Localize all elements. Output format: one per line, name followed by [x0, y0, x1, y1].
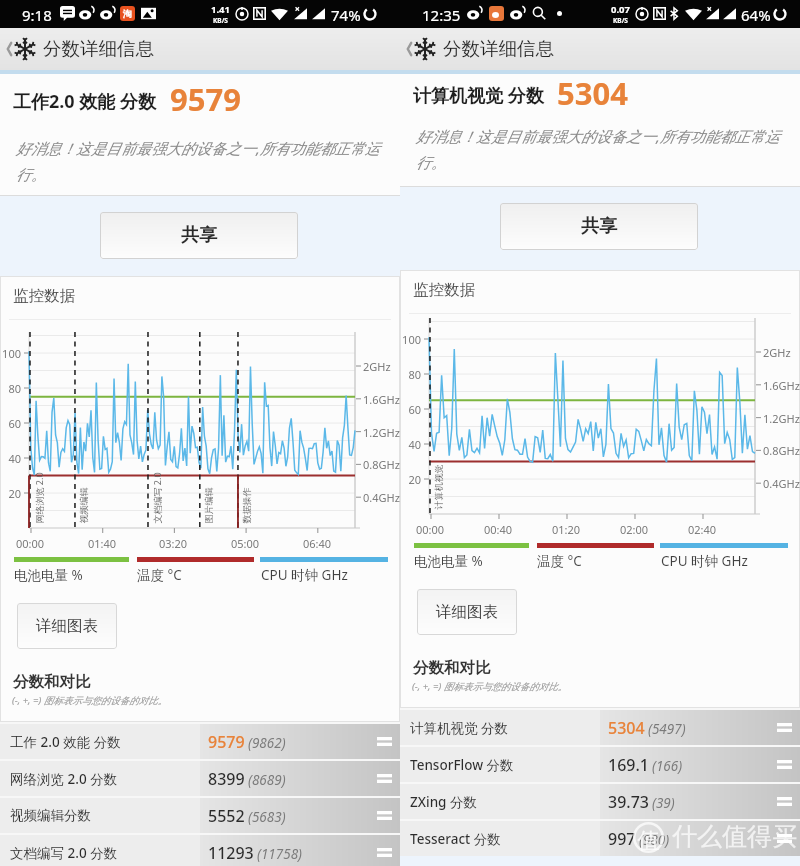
staticText: 监控数据 — [13, 286, 75, 306]
staticText: (11758) — [257, 845, 303, 863]
staticText: 2GHz — [763, 345, 791, 360]
staticText: 9:18 — [22, 5, 52, 25]
staticText: 9579 — [208, 731, 245, 753]
staticText: 好消息！这是目前最强大的设备之一,所有功能都正常运行。 — [16, 138, 394, 185]
staticText: 5552 — [208, 805, 245, 827]
staticText: 计算机视觉 分数 — [410, 719, 509, 737]
staticText: 工作2.0 效能 分数 — [13, 89, 157, 114]
staticText: 0.07 — [611, 3, 630, 16]
staticText: 1.2GHz — [363, 425, 400, 440]
staticText: 1.2GHz — [763, 411, 800, 426]
staticText: 12:35 — [422, 5, 461, 25]
staticText: 64% — [741, 5, 771, 25]
staticText: 1.6GHz — [763, 378, 800, 393]
staticText: 5304 — [557, 72, 628, 114]
staticText: 20 — [0, 486, 21, 501]
staticText: 网络浏览 2.0 分数 — [10, 770, 118, 788]
staticText: (8689) — [248, 771, 286, 789]
button[interactable]: 工作 2.0 效能 分数 — [0, 724, 400, 759]
staticText: 数据操作 — [240, 487, 251, 523]
staticText: 05:00 — [231, 536, 260, 551]
button[interactable]: Back — [402, 29, 438, 69]
staticText: (39) — [652, 794, 675, 812]
staticText: 00:00 — [416, 522, 445, 537]
button[interactable]: ZXing 分数 — [400, 784, 800, 819]
staticText: 什么值得买 — [672, 821, 797, 852]
button[interactable]: 计算机视觉 分数 — [400, 710, 800, 745]
staticText: 文档编写 2.0 分数 — [10, 844, 118, 862]
staticText: 温度 °C — [537, 552, 582, 570]
staticText: 00:00 — [16, 536, 45, 551]
button[interactable]: 网络浏览 2.0 分数 — [0, 761, 400, 796]
staticText: 视频编辑分数 — [10, 807, 91, 824]
staticText: 淘 — [123, 8, 132, 19]
button[interactable]: Back — [2, 29, 38, 69]
staticText: 计算机视觉 — [432, 464, 443, 509]
staticText: 100 — [400, 332, 421, 347]
staticText: 74% — [331, 5, 361, 25]
staticText: (-, +, =) 图标表示与您的设备的对比。 — [412, 680, 568, 693]
staticText: 02:40 — [688, 522, 717, 537]
staticText: 8399 — [208, 768, 245, 790]
staticText: 1.41 — [211, 3, 230, 16]
staticText: 5304 — [608, 717, 645, 739]
staticText: 1.6GHz — [363, 392, 400, 407]
staticText: 11293 — [208, 842, 254, 864]
staticText: 02:00 — [620, 522, 649, 537]
staticText: 共享 — [581, 215, 617, 238]
staticText: 00:40 — [484, 522, 513, 537]
button[interactable]: 详细图表 — [417, 589, 517, 635]
staticText: 分数详细信息 — [443, 37, 554, 60]
staticText: 60 — [0, 416, 21, 431]
staticText: (9862) — [248, 734, 286, 752]
staticText: 电池电量 % — [414, 552, 483, 570]
staticText: CPU 时钟 GHz — [661, 552, 748, 570]
staticText: 分数和对比 — [413, 658, 491, 678]
button[interactable]: 详细图表 — [17, 603, 117, 649]
staticText: 值 — [637, 827, 660, 855]
staticText: KB/S — [613, 16, 628, 25]
staticText: 详细图表 — [36, 616, 98, 636]
staticText: 01:20 — [552, 522, 581, 537]
button[interactable]: TensorFlow 分数 — [400, 747, 800, 782]
button[interactable]: 共享 — [500, 203, 698, 250]
staticText: (-, +, =) 图标表示与您的设备的对比。 — [12, 694, 168, 707]
staticText: ZXing 分数 — [410, 793, 477, 811]
staticText: 20 — [400, 472, 421, 487]
staticText: (5497) — [648, 720, 686, 738]
staticText: (166) — [652, 757, 683, 775]
button[interactable]: 文档编写 2.0 分数 — [0, 835, 400, 866]
staticText: 详细图表 — [436, 602, 498, 622]
staticText: CPU 时钟 GHz — [261, 566, 348, 584]
button[interactable]: Tesseract 分数 — [400, 821, 800, 856]
staticText: 100 — [0, 346, 21, 361]
staticText: 图片编辑 — [202, 487, 213, 523]
staticText: (980) — [639, 831, 670, 849]
staticText: 视频编辑 — [77, 487, 88, 523]
staticText: 40 — [0, 451, 21, 466]
staticText: 好消息！这是目前最强大的设备之一,所有功能都正常运行。 — [416, 126, 794, 173]
staticText: 06:40 — [303, 536, 332, 551]
staticText: (5683) — [248, 808, 286, 826]
staticText: 电池电量 % — [14, 566, 83, 584]
staticText: Tesseract 分数 — [410, 830, 501, 848]
staticText: 60 — [400, 402, 421, 417]
staticText: 2GHz — [363, 359, 391, 374]
staticText: 40 — [400, 437, 421, 452]
staticText: 169.1 — [608, 754, 649, 776]
staticText: KB/S — [213, 16, 228, 25]
staticText: 03:20 — [159, 536, 188, 551]
staticText: 9579 — [170, 78, 241, 120]
staticText: 0.4GHz — [763, 476, 800, 491]
staticText: 网络浏览 2.0 — [32, 471, 44, 523]
staticText: 0.8GHz — [763, 443, 800, 458]
staticText: 01:40 — [88, 536, 117, 551]
staticText: 0.8GHz — [363, 457, 400, 472]
staticText: 监控数据 — [413, 280, 475, 300]
staticText: 共享 — [181, 224, 217, 247]
button[interactable]: 共享 — [100, 212, 298, 259]
staticText: TensorFlow 分数 — [410, 756, 514, 774]
button[interactable]: 视频编辑分数 — [0, 798, 400, 833]
staticText: 分数和对比 — [13, 672, 91, 692]
staticText: 工作 2.0 效能 分数 — [10, 733, 121, 751]
